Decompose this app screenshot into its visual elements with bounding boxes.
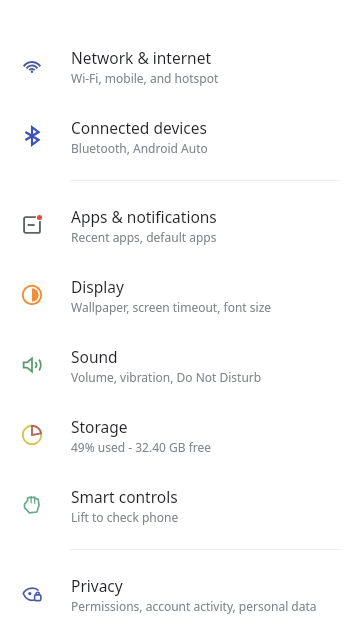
button[interactable]: Sound — [0, 330, 360, 400]
staticText: Storage — [71, 416, 128, 437]
staticText: 49% used - 32.40 GB free — [71, 439, 212, 455]
staticText: Wi-Fi, mobile, and hotspot — [71, 70, 219, 86]
staticText: Permissions, account activity, personal … — [71, 598, 317, 614]
button[interactable]: Network & internet — [0, 31, 360, 101]
button[interactable]: Privacy — [0, 559, 360, 629]
button[interactable]: Apps & notifications — [0, 190, 360, 260]
staticText: Bluetooth, Android Auto — [71, 140, 208, 156]
staticText: Sound — [71, 346, 118, 367]
staticText: Display — [71, 276, 124, 297]
staticText: Network & internet — [71, 47, 211, 68]
staticText: Connected devices — [71, 117, 207, 138]
button[interactable]: Storage — [0, 400, 360, 470]
staticText: Wallpaper, screen timeout, font size — [71, 299, 272, 315]
staticText: Smart controls — [71, 486, 178, 507]
staticText: Privacy — [71, 575, 123, 596]
staticText: Lift to check phone — [71, 509, 179, 525]
staticText: Volume, vibration, Do Not Disturb — [71, 369, 262, 385]
button[interactable]: Smart controls — [0, 470, 360, 540]
button[interactable]: Connected devices — [0, 101, 360, 171]
staticText: Recent apps, default apps — [71, 229, 217, 245]
button[interactable]: Display — [0, 260, 360, 330]
staticText: Apps & notifications — [71, 206, 217, 227]
